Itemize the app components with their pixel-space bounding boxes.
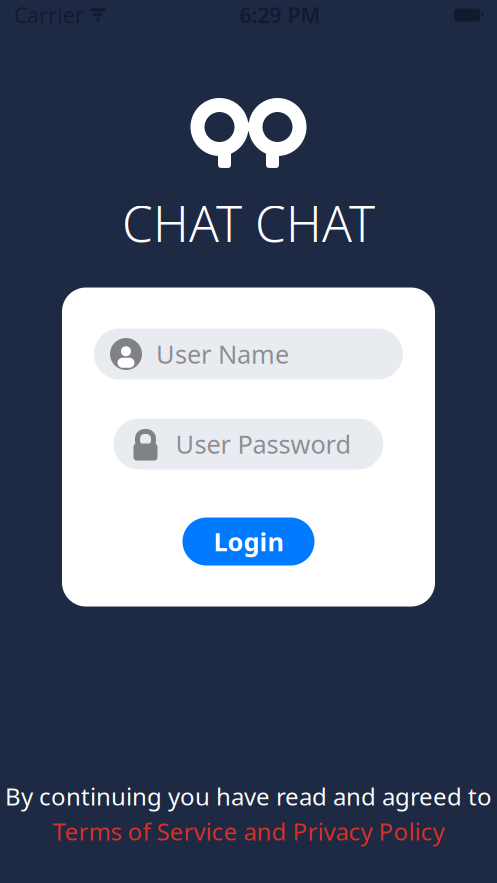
- staticText: Terms of Service and Privacy Policy: [52, 815, 444, 847]
- staticText: User Name: [156, 337, 289, 371]
- staticText: User Password: [175, 427, 351, 461]
- staticText: 6:29 PM: [239, 1, 320, 29]
- button[interactable]: User Password: [113, 418, 383, 469]
- staticText: By continuing you have read and agreed t…: [5, 780, 492, 812]
- staticText: Login: [213, 525, 283, 558]
- button[interactable]: Login: [182, 517, 314, 565]
- button[interactable]: User Name: [94, 328, 403, 379]
- staticText: Carrier: [14, 1, 84, 29]
- button[interactable]: Terms of Service and Privacy Policy: [52, 815, 444, 847]
- staticText: CHAT CHAT: [122, 190, 375, 255]
